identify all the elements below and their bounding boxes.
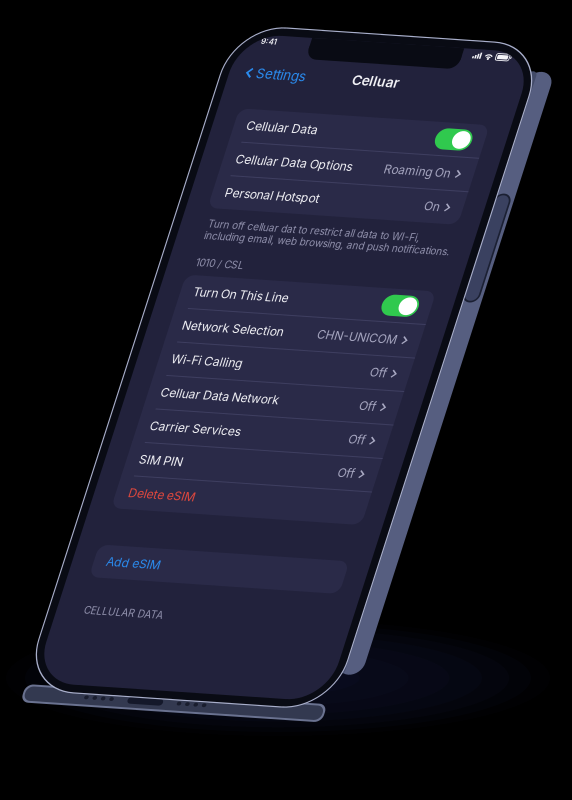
button[interactable]: Personal Hotspot xyxy=(31,156,291,190)
staticText: Off xyxy=(250,409,267,424)
button[interactable]: Cellular Data Options xyxy=(31,121,291,155)
button[interactable]: Celluar Data Network xyxy=(31,365,291,399)
staticText: Add eSIM xyxy=(44,551,100,566)
staticText: Delete eSIM xyxy=(44,479,113,494)
button[interactable]: Wi-Fi Calling xyxy=(31,330,291,364)
button[interactable]: Add eSIM xyxy=(31,542,291,576)
staticText: Carrier Services xyxy=(44,409,138,424)
button[interactable]: SIM PIN xyxy=(31,435,291,469)
staticText: CELLULAR DATA xyxy=(37,604,119,616)
staticText: Off xyxy=(250,374,267,389)
staticText: On xyxy=(251,166,267,180)
button[interactable]: Cellular Data xyxy=(31,86,291,120)
staticText: Celluar Data Network xyxy=(44,374,167,389)
button[interactable]: Network Selection xyxy=(31,295,291,329)
staticText: Turn off celluar dat to restrict all dat… xyxy=(37,200,292,224)
staticText: Roaming On xyxy=(198,131,267,145)
button[interactable]: Delete eSIM xyxy=(31,470,291,504)
staticText: Off xyxy=(250,339,267,354)
button[interactable]: Carrier Services xyxy=(31,400,291,434)
staticText: Network Selection xyxy=(44,304,149,319)
button[interactable]: Turn On This Line xyxy=(31,260,291,294)
staticText: CHN-UNICOM xyxy=(184,304,267,319)
staticText: Off xyxy=(250,444,267,459)
